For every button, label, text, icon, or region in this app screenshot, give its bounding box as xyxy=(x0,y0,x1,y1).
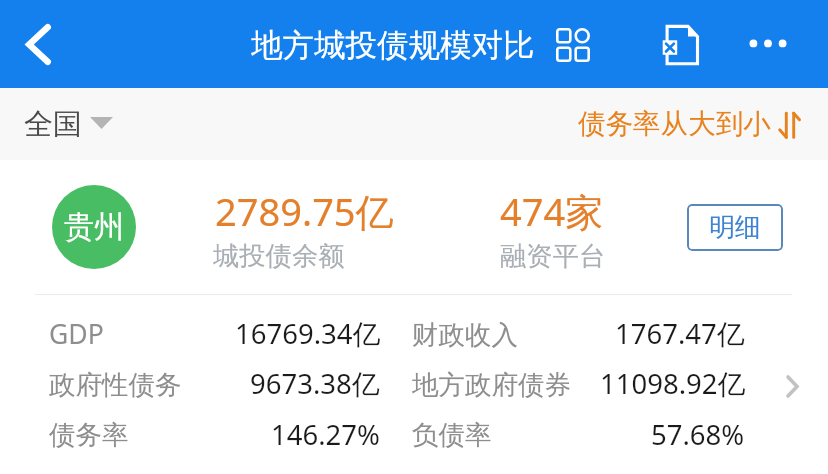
staticText: 全国 xyxy=(24,106,82,143)
button[interactable]: Grid view xyxy=(548,20,596,68)
button[interactable]: More options xyxy=(735,18,799,70)
staticText: 财政收入 xyxy=(412,318,518,351)
staticText: 9673.38亿 xyxy=(250,365,380,403)
staticText: 明细 xyxy=(709,211,761,244)
staticText: 地方城投债规模对比 xyxy=(251,26,535,66)
staticText: 地方政府债券 xyxy=(412,368,571,401)
staticText: 2789.75亿 xyxy=(215,185,394,237)
staticText: 1767.47亿 xyxy=(615,315,745,353)
staticText: 城投债余额 xyxy=(213,240,345,273)
button[interactable]: 明细 xyxy=(687,204,783,251)
staticText: 债务率从大到小 xyxy=(578,107,771,142)
staticText: 146.27% xyxy=(271,416,380,453)
button[interactable]: 政府性债务 xyxy=(0,359,828,409)
button[interactable]: Export to Excel xyxy=(650,14,712,76)
button[interactable]: 贵州 xyxy=(0,160,828,294)
staticText: GDP xyxy=(49,316,104,352)
button[interactable]: 债务率 xyxy=(0,409,828,459)
staticText: 11098.92亿 xyxy=(600,365,745,403)
button[interactable]: 全国 xyxy=(16,100,121,149)
staticText: 政府性债务 xyxy=(49,368,182,401)
staticText: 融资平台 xyxy=(500,240,606,273)
staticText: 57.68% xyxy=(651,416,745,453)
staticText: 贵州 xyxy=(64,208,124,246)
button[interactable]: Back xyxy=(6,12,70,76)
staticText: 474家 xyxy=(500,185,604,237)
button[interactable]: GDP xyxy=(0,309,828,359)
button[interactable]: 债务率从大到小 xyxy=(572,99,807,150)
staticText: 16769.34亿 xyxy=(235,315,380,353)
staticText: 债务率 xyxy=(49,418,129,451)
staticText: 负债率 xyxy=(412,418,492,451)
